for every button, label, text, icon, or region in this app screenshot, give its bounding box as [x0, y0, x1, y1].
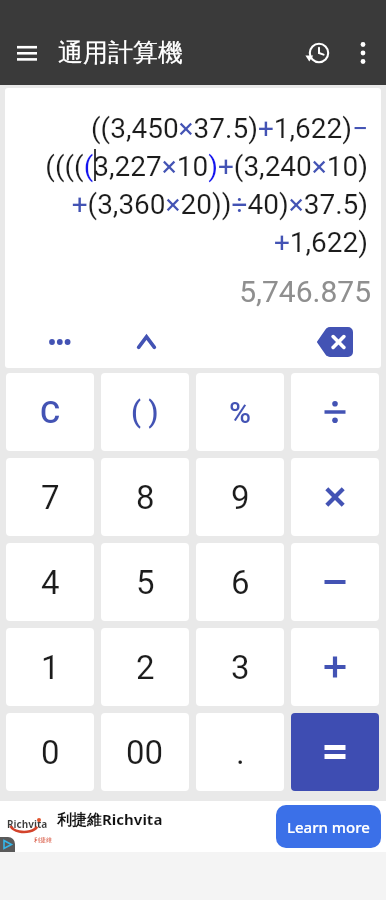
- staticText: 0: [41, 733, 60, 772]
- staticText: .: [236, 733, 245, 772]
- button[interactable]: [291, 628, 379, 706]
- button[interactable]: [291, 373, 379, 451]
- staticText: Learn more: [287, 817, 370, 837]
- button[interactable]: ( ): [101, 373, 189, 451]
- staticText: 2: [136, 648, 155, 687]
- button[interactable]: 8: [101, 458, 189, 536]
- button[interactable]: 7: [6, 458, 94, 536]
- button[interactable]: 00: [101, 713, 189, 791]
- button[interactable]: 5: [101, 543, 189, 621]
- staticText: 利捷維: [34, 836, 52, 844]
- button[interactable]: %: [196, 373, 284, 451]
- button[interactable]: C: [6, 373, 94, 451]
- button[interactable]: 9: [196, 458, 284, 536]
- button[interactable]: .: [196, 713, 284, 791]
- staticText: 5: [136, 563, 155, 602]
- staticText: 3: [231, 648, 250, 687]
- staticText: 1: [41, 648, 60, 687]
- button[interactable]: Learn more: [276, 805, 381, 848]
- staticText: 7: [41, 478, 60, 517]
- button[interactable]: [291, 713, 379, 791]
- staticText: 00: [126, 733, 164, 772]
- button[interactable]: [99, 316, 193, 368]
- staticText: 5,746.875: [5, 274, 371, 309]
- staticText: 通用計算機: [58, 37, 183, 68]
- staticText: 8: [136, 478, 155, 517]
- button[interactable]: 2: [101, 628, 189, 706]
- button[interactable]: [5, 31, 49, 75]
- staticText: C: [40, 394, 61, 430]
- staticText: 6: [231, 563, 250, 602]
- button[interactable]: 3: [196, 628, 284, 706]
- staticText: 利捷維Richvita: [57, 809, 163, 829]
- button[interactable]: 6: [196, 543, 284, 621]
- button[interactable]: [296, 31, 340, 75]
- button[interactable]: [287, 316, 381, 368]
- staticText: 9: [231, 478, 250, 517]
- staticText: 4: [41, 563, 60, 602]
- button[interactable]: [291, 458, 379, 536]
- staticText: Richvita: [7, 817, 48, 831]
- button[interactable]: [5, 316, 99, 368]
- button[interactable]: [340, 30, 386, 76]
- staticText: ((3,450×37.5)+1,622)− (((((3,227×10)+(3,…: [18, 112, 368, 259]
- staticText: ( ): [131, 395, 159, 429]
- button[interactable]: 1: [6, 628, 94, 706]
- button[interactable]: 4: [6, 543, 94, 621]
- button[interactable]: 0: [6, 713, 94, 791]
- button[interactable]: [0, 837, 15, 852]
- button[interactable]: [291, 543, 379, 621]
- staticText: %: [229, 395, 252, 430]
